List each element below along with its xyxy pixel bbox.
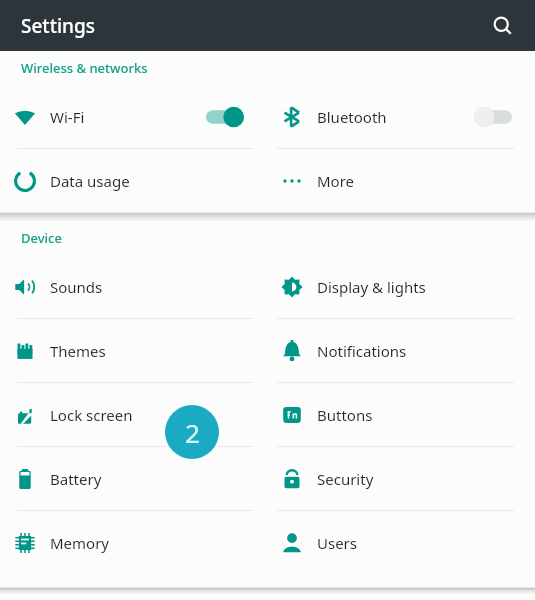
staticText: Battery <box>50 469 245 489</box>
staticText: 2 <box>185 415 200 450</box>
staticText: Lock screen <box>50 405 245 425</box>
button[interactable]: Battery <box>0 447 267 510</box>
staticText: Notifications <box>317 341 513 361</box>
button[interactable]: Display & lights <box>267 255 535 318</box>
button[interactable]: Search <box>483 6 523 46</box>
button[interactable]: Themes <box>0 319 267 382</box>
staticText: Wireless & networks <box>21 59 148 77</box>
button[interactable]: Users <box>267 511 535 574</box>
staticText: Themes <box>50 341 245 361</box>
button[interactable]: 2 notifications <box>165 405 219 459</box>
staticText: Buttons <box>317 405 513 425</box>
button[interactable]: Lock screen <box>0 383 267 446</box>
staticText: Device <box>21 229 62 247</box>
staticText: Bluetooth <box>317 107 473 127</box>
staticText: Wi-Fi <box>50 107 205 127</box>
staticText: More <box>317 171 513 191</box>
button[interactable]: Data usage <box>0 149 267 212</box>
button[interactable]: Buttons <box>267 383 535 446</box>
staticText: Display & lights <box>317 277 513 297</box>
button[interactable]: More <box>267 149 535 212</box>
button[interactable]: Wi-Fi <box>0 85 267 148</box>
staticText: Settings <box>21 13 95 39</box>
staticText: Users <box>317 533 513 553</box>
button[interactable]: Security <box>267 447 535 510</box>
button[interactable]: Notifications <box>267 319 535 382</box>
button[interactable]: Bluetooth <box>267 85 535 148</box>
button[interactable]: Memory <box>0 511 267 574</box>
staticText: Memory <box>50 533 245 553</box>
button[interactable]: Sounds <box>0 255 267 318</box>
staticText: Security <box>317 469 513 489</box>
staticText: Data usage <box>50 171 245 191</box>
staticText: Sounds <box>50 277 245 297</box>
